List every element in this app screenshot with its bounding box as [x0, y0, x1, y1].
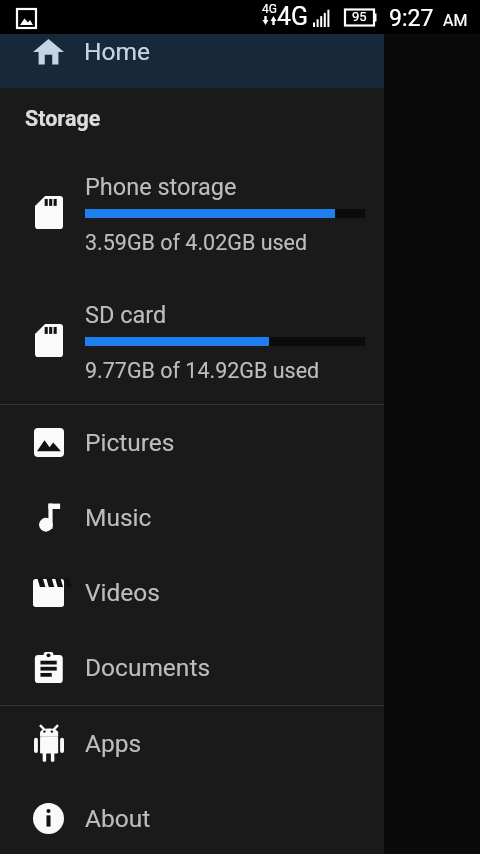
staticText: Apps: [85, 729, 142, 758]
staticText: Pictures: [85, 428, 175, 457]
staticText: SD card: [85, 301, 167, 329]
staticText: Music: [85, 503, 152, 532]
button[interactable]: Pictures: [0, 405, 384, 480]
staticText: Phone storage: [85, 173, 237, 201]
staticText: Documents: [85, 653, 211, 682]
button[interactable]: About: [0, 781, 384, 854]
staticText: Videos: [85, 578, 160, 607]
button[interactable]: Apps: [0, 706, 384, 781]
staticText: 9.77GB of 14.92GB used: [85, 358, 320, 383]
button[interactable]: Videos: [0, 555, 384, 630]
button[interactable]: Home: [0, 14, 384, 88]
staticText: 95: [352, 9, 367, 24]
staticText: 4G: [262, 2, 277, 16]
staticText: 9:27: [389, 5, 434, 32]
button[interactable]: SD card: [0, 276, 384, 404]
staticText: Storage: [25, 106, 101, 131]
button[interactable]: Phone storage: [0, 148, 384, 276]
staticText: AM: [443, 11, 468, 30]
button[interactable]: Documents: [0, 630, 384, 705]
button[interactable]: Music: [0, 480, 384, 555]
staticText: 3.59GB of 4.02GB used: [85, 230, 308, 255]
staticText: 4G: [277, 2, 309, 31]
staticText: About: [85, 804, 151, 833]
staticText: Home: [84, 37, 150, 66]
